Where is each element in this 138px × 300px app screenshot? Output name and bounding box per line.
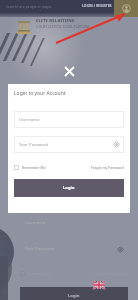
staticText: Search here people or pages (6, 4, 52, 9)
button[interactable]: Forgot my Password (91, 165, 124, 170)
button[interactable]: Your Password (20, 241, 128, 257)
button[interactable]: LOGIN / REGISTER (78, 0, 114, 8)
staticText: Login (68, 293, 80, 299)
button[interactable]: Login (14, 179, 124, 197)
button[interactable]: Close (62, 64, 76, 78)
staticText: ELITE RELATIONS (36, 18, 75, 24)
staticText: Username (25, 220, 46, 226)
button[interactable]: Account (114, 0, 138, 17)
button[interactable]: Language (93, 281, 105, 289)
staticText: LUXURY LIFESTYLE SOCIAL PLATFORM (36, 25, 89, 29)
staticText: LOGIN / REGISTER (82, 4, 112, 8)
staticText: Username (19, 117, 40, 123)
staticText: Login to your Account (14, 90, 66, 97)
staticText: Your Password (19, 142, 49, 148)
button[interactable]: Username (14, 111, 124, 128)
staticText: Remember Me (22, 165, 46, 170)
button[interactable]: Your Password (14, 136, 124, 153)
staticText: Your Password (25, 246, 55, 252)
button[interactable] (14, 165, 19, 170)
button[interactable]: Login (20, 287, 128, 300)
staticText: Login (63, 185, 75, 191)
